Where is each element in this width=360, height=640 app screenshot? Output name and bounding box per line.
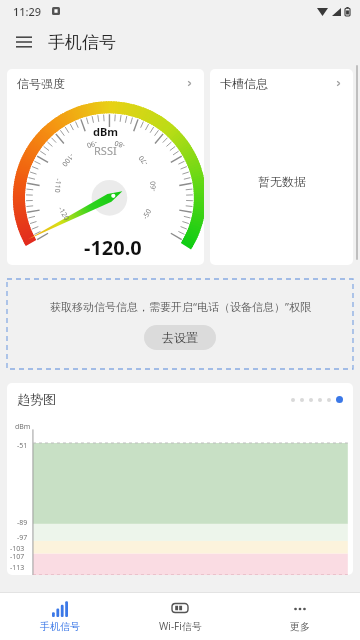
staticText: dBm <box>15 422 31 432</box>
staticText: -103 <box>10 544 25 554</box>
staticText: -80 <box>113 138 126 150</box>
button[interactable]: Wi-Fi信号 <box>120 593 240 640</box>
other: Open 卡槽信息 <box>334 79 343 88</box>
staticText: -107 <box>10 552 25 562</box>
button[interactable]: Menu <box>8 26 40 58</box>
staticText: -120 <box>55 205 72 223</box>
staticText: 手机信号 <box>48 32 116 53</box>
staticText: -100 <box>59 151 76 169</box>
staticText: dBm <box>93 124 118 139</box>
staticText: 暂无数据 <box>258 174 306 189</box>
staticText: RSSI <box>94 143 117 158</box>
staticText: -51 <box>17 441 28 451</box>
staticText: -97 <box>17 533 28 543</box>
staticText: 去设置 <box>162 330 198 345</box>
button[interactable]: 手机信号 <box>0 593 120 640</box>
button[interactable]: 去设置 <box>144 325 216 350</box>
button[interactable]: 更多 <box>240 593 360 640</box>
staticText: 更多 <box>290 620 310 633</box>
staticText: -50 <box>140 207 155 221</box>
staticText: -110 <box>52 178 63 194</box>
staticText: 手机信号 <box>40 620 80 633</box>
staticText: Wi-Fi信号 <box>159 619 202 633</box>
staticText: 11:29 <box>13 4 42 19</box>
staticText: -113 <box>10 563 25 573</box>
staticText: 获取移动信号信息，需要开启“电话（设备信息）”权限 <box>50 299 311 314</box>
staticText: -89 <box>17 518 28 528</box>
button[interactable]: 信号强度 <box>7 69 204 97</box>
staticText: 信号强度 <box>17 76 65 91</box>
staticText: -70 <box>136 153 151 167</box>
button[interactable]: 趋势图 <box>7 383 353 415</box>
button[interactable]: 获取移动信号信息，需要开启“电话（设备信息）”权限 <box>7 279 353 369</box>
button[interactable]: 卡槽信息 <box>210 69 353 97</box>
staticText: -60 <box>148 180 159 192</box>
staticText: -120.0 <box>84 234 142 261</box>
staticText: -90 <box>85 138 98 150</box>
staticText: 趋势图 <box>17 391 56 407</box>
other: Open 信号强度 <box>185 79 194 88</box>
staticText: 卡槽信息 <box>220 76 268 91</box>
